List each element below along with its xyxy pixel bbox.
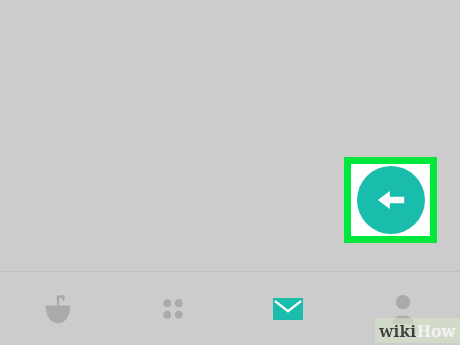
button[interactable]: Profile xyxy=(345,272,460,345)
button[interactable]: Apps xyxy=(115,272,230,345)
staticText: How xyxy=(417,319,456,342)
button[interactable]: Home xyxy=(0,272,115,345)
button[interactable]: Messages xyxy=(230,272,345,345)
button[interactable]: Back xyxy=(351,164,430,236)
staticText: wiki xyxy=(379,319,417,342)
